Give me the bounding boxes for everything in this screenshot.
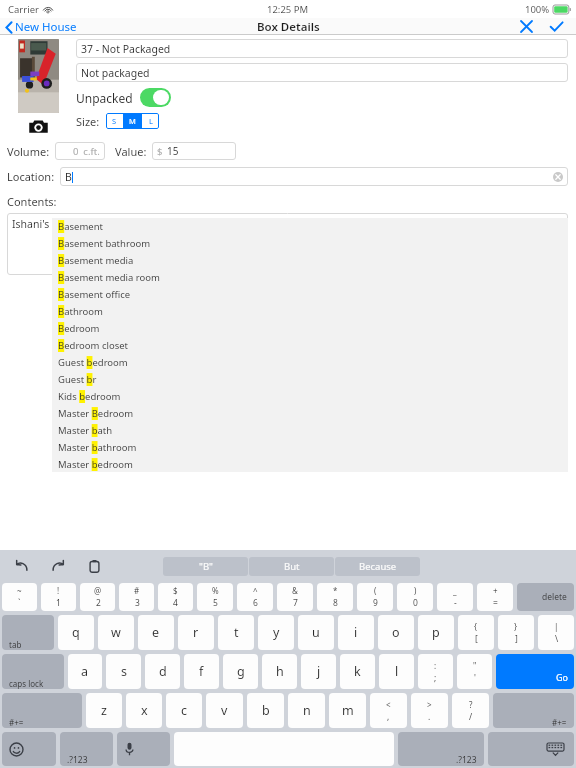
button[interactable]: + — [477, 583, 513, 611]
button[interactable]: S — [106, 113, 123, 129]
staticText: { — [474, 621, 478, 632]
button[interactable]: L — [142, 113, 159, 129]
button[interactable]: q — [58, 615, 94, 650]
button[interactable]: r — [178, 615, 214, 650]
button[interactable]: Master bath — [52, 422, 568, 439]
button[interactable]: ( — [357, 583, 393, 611]
button[interactable]: @ — [80, 583, 115, 611]
button[interactable]: Basement — [52, 218, 568, 235]
button[interactable]: Undo — [12, 556, 32, 576]
button[interactable]: Paste — [84, 556, 104, 576]
button[interactable]: .?123 — [60, 732, 113, 766]
button[interactable]: Master bathroom — [52, 439, 568, 456]
button[interactable]: % — [197, 583, 233, 611]
staticText: S — [112, 116, 117, 126]
button[interactable]: Guest br — [52, 371, 568, 388]
button[interactable]: & — [277, 583, 313, 611]
button[interactable]: * — [317, 583, 353, 611]
button[interactable]: Bedroom closet — [52, 337, 568, 354]
button[interactable]: Emoji — [2, 732, 56, 766]
button[interactable]: tab — [2, 615, 54, 650]
button[interactable]: Ishani's bike — [7, 213, 568, 275]
button[interactable]: caps lock — [2, 654, 64, 689]
button[interactable]: 0 c.ft. — [55, 142, 105, 160]
button[interactable]: Kids bedroom — [52, 388, 568, 405]
button[interactable]: New House — [5, 19, 77, 35]
button[interactable]: d — [145, 654, 180, 689]
button[interactable]: | — [538, 615, 574, 650]
button[interactable]: h — [262, 654, 297, 689]
button[interactable]: f — [184, 654, 219, 689]
staticText: Bathroom — [58, 305, 103, 318]
button[interactable]: Not packaged — [76, 63, 568, 82]
button[interactable]: Hide keyboard — [488, 732, 574, 766]
button[interactable]: Take photo — [26, 116, 51, 136]
button[interactable]: $ — [152, 142, 236, 160]
button[interactable]: 37 - Not Packaged — [76, 39, 568, 58]
button[interactable]: Go — [496, 654, 574, 689]
button[interactable]: g — [223, 654, 258, 689]
button[interactable]: c — [166, 693, 202, 728]
button[interactable]: n — [288, 693, 325, 728]
button[interactable]: $ — [158, 583, 193, 611]
button[interactable]: Redo — [48, 556, 68, 576]
button[interactable]: j — [301, 654, 336, 689]
button[interactable]: ? — [452, 693, 489, 728]
staticText: : — [434, 660, 437, 671]
button[interactable]: Bedroom — [52, 320, 568, 337]
button[interactable]: Because — [335, 557, 420, 576]
button[interactable]: " — [457, 654, 492, 689]
button[interactable]: x — [126, 693, 162, 728]
button[interactable]: Unpacked toggle — [140, 88, 171, 107]
button[interactable]: v — [206, 693, 243, 728]
button[interactable]: Basement office — [52, 286, 568, 303]
button[interactable]: Cancel — [516, 18, 536, 35]
button[interactable]: ! — [41, 583, 76, 611]
button[interactable]: M — [124, 113, 141, 129]
button[interactable]: Master Bedroom — [52, 405, 568, 422]
button[interactable]: b — [247, 693, 284, 728]
button[interactable]: _ — [437, 583, 473, 611]
button[interactable]: ~ — [2, 583, 37, 611]
button[interactable]: k — [340, 654, 375, 689]
button[interactable]: u — [298, 615, 334, 650]
button[interactable]: Dictate — [117, 732, 170, 766]
button[interactable]: # — [119, 583, 154, 611]
button[interactable]: ) — [397, 583, 433, 611]
button[interactable]: Master bedroom — [52, 456, 568, 472]
button[interactable]: > — [411, 693, 448, 728]
staticText: z — [101, 702, 107, 719]
button[interactable]: delete — [517, 583, 574, 611]
button[interactable]: t — [218, 615, 254, 650]
button[interactable]: p — [418, 615, 454, 650]
button[interactable]: ^ — [237, 583, 273, 611]
button[interactable]: Save — [546, 18, 566, 35]
button[interactable]: Basement media — [52, 252, 568, 269]
button[interactable]: } — [498, 615, 534, 650]
button[interactable]: B — [60, 167, 568, 186]
button[interactable]: a — [68, 654, 102, 689]
button[interactable]: o — [378, 615, 414, 650]
button[interactable]: But — [249, 557, 334, 576]
button[interactable]: Guest bedroom — [52, 354, 568, 371]
button[interactable]: s — [106, 654, 141, 689]
button[interactable]: m — [329, 693, 366, 728]
button[interactable]: #+= — [2, 693, 82, 728]
button[interactable]: w — [98, 615, 134, 650]
button[interactable]: .?123 — [398, 732, 484, 766]
button[interactable]: { — [458, 615, 494, 650]
button[interactable]: : — [418, 654, 453, 689]
button[interactable]: Basement bathroom — [52, 235, 568, 252]
button[interactable]: < — [370, 693, 407, 728]
button[interactable]: "B" — [163, 557, 248, 576]
button[interactable]: Bathroom — [52, 303, 568, 320]
button[interactable]: e — [138, 615, 174, 650]
button[interactable]: z — [86, 693, 122, 728]
button[interactable]: i — [338, 615, 374, 650]
button[interactable]: Box photo — [18, 39, 59, 113]
button[interactable]: y — [258, 615, 294, 650]
button[interactable]: #+= — [493, 693, 574, 728]
button[interactable]: Basement media room — [52, 269, 568, 286]
button[interactable]: l — [379, 654, 414, 689]
